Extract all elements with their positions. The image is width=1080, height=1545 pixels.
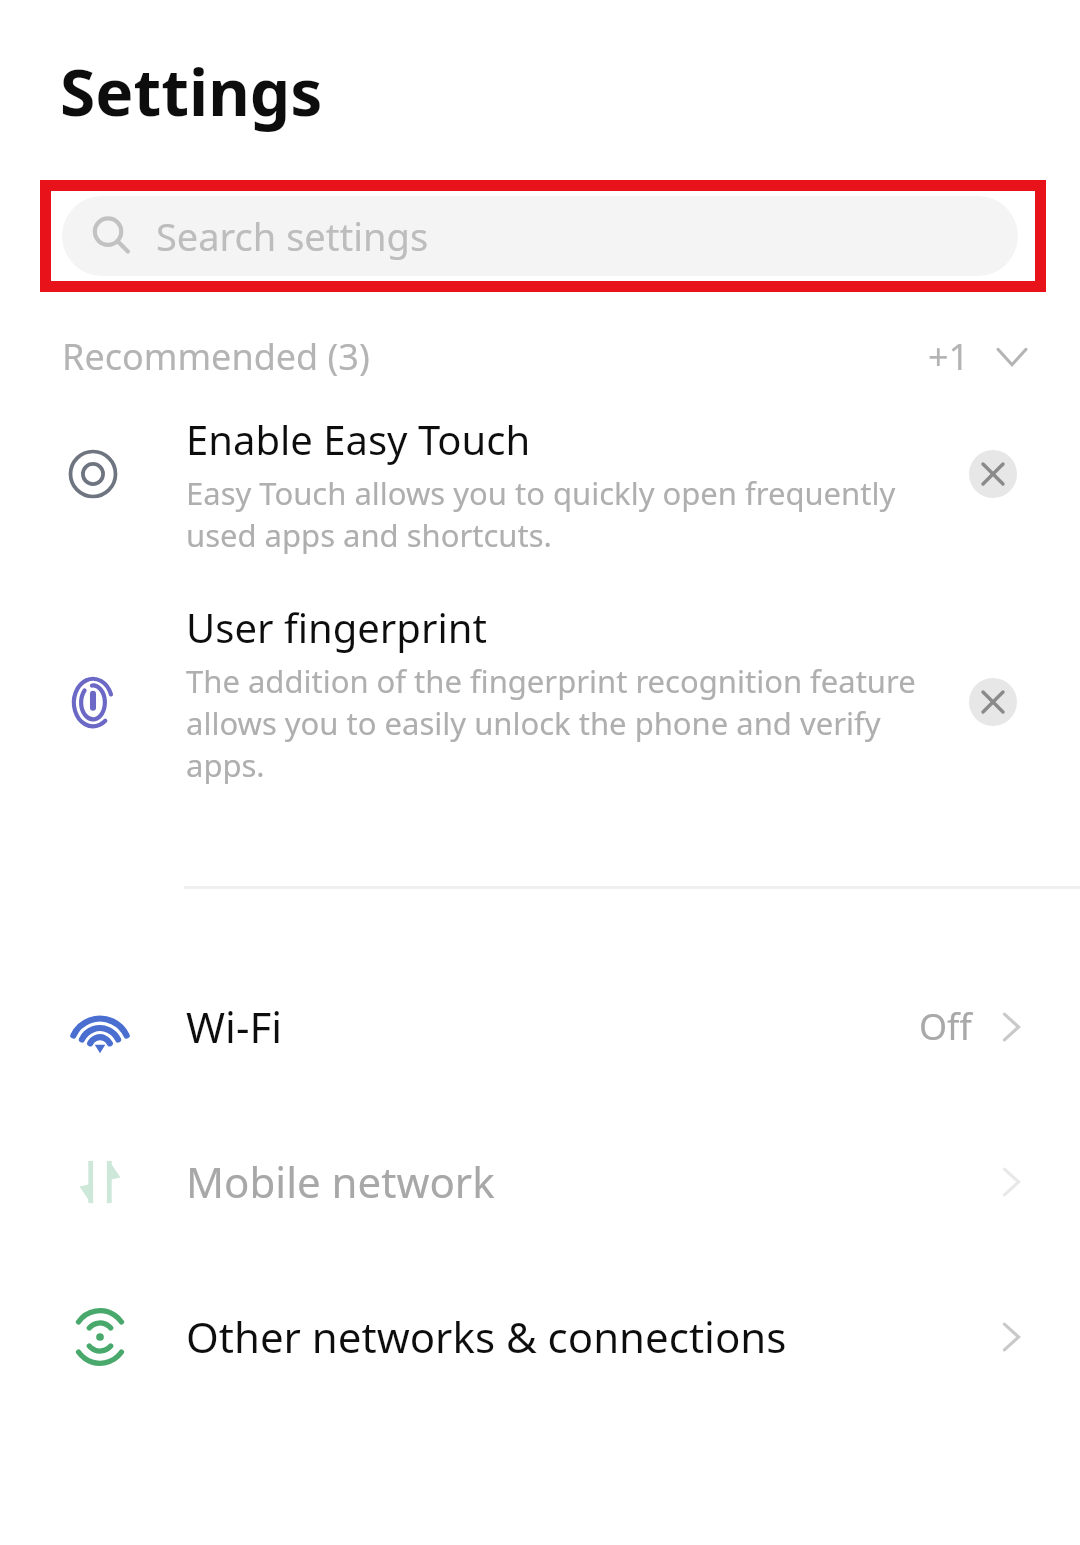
staticText: User fingerprint xyxy=(186,600,487,654)
staticText: Easy Touch allows you to quickly open fr… xyxy=(186,472,934,556)
staticText: Enable Easy Touch xyxy=(186,412,531,466)
button[interactable]: Recommended (3) xyxy=(0,310,1080,402)
button[interactable]: Dismiss suggestion xyxy=(969,678,1017,726)
button[interactable]: Wi-Fi xyxy=(0,949,1080,1104)
button[interactable]: Other networks & connections xyxy=(0,1259,1080,1414)
staticText: Off xyxy=(919,1002,972,1051)
staticText: The addition of the fingerprint recognit… xyxy=(186,660,934,786)
button[interactable]: Enable Easy Touch xyxy=(0,402,1080,594)
button[interactable]: User fingerprint xyxy=(0,594,1080,862)
button[interactable]: Dismiss suggestion xyxy=(969,450,1017,498)
staticText: Search settings xyxy=(156,210,429,262)
staticText: +1 xyxy=(928,332,970,381)
staticText: Wi-Fi xyxy=(186,998,283,1055)
staticText: Settings xyxy=(60,48,323,135)
staticText: Recommended (3) xyxy=(62,332,370,381)
staticText: Mobile network xyxy=(186,1153,495,1210)
button[interactable]: Search settings xyxy=(62,196,1018,276)
staticText: Other networks & connections xyxy=(186,1308,787,1365)
button[interactable]: Mobile network xyxy=(0,1104,1080,1259)
